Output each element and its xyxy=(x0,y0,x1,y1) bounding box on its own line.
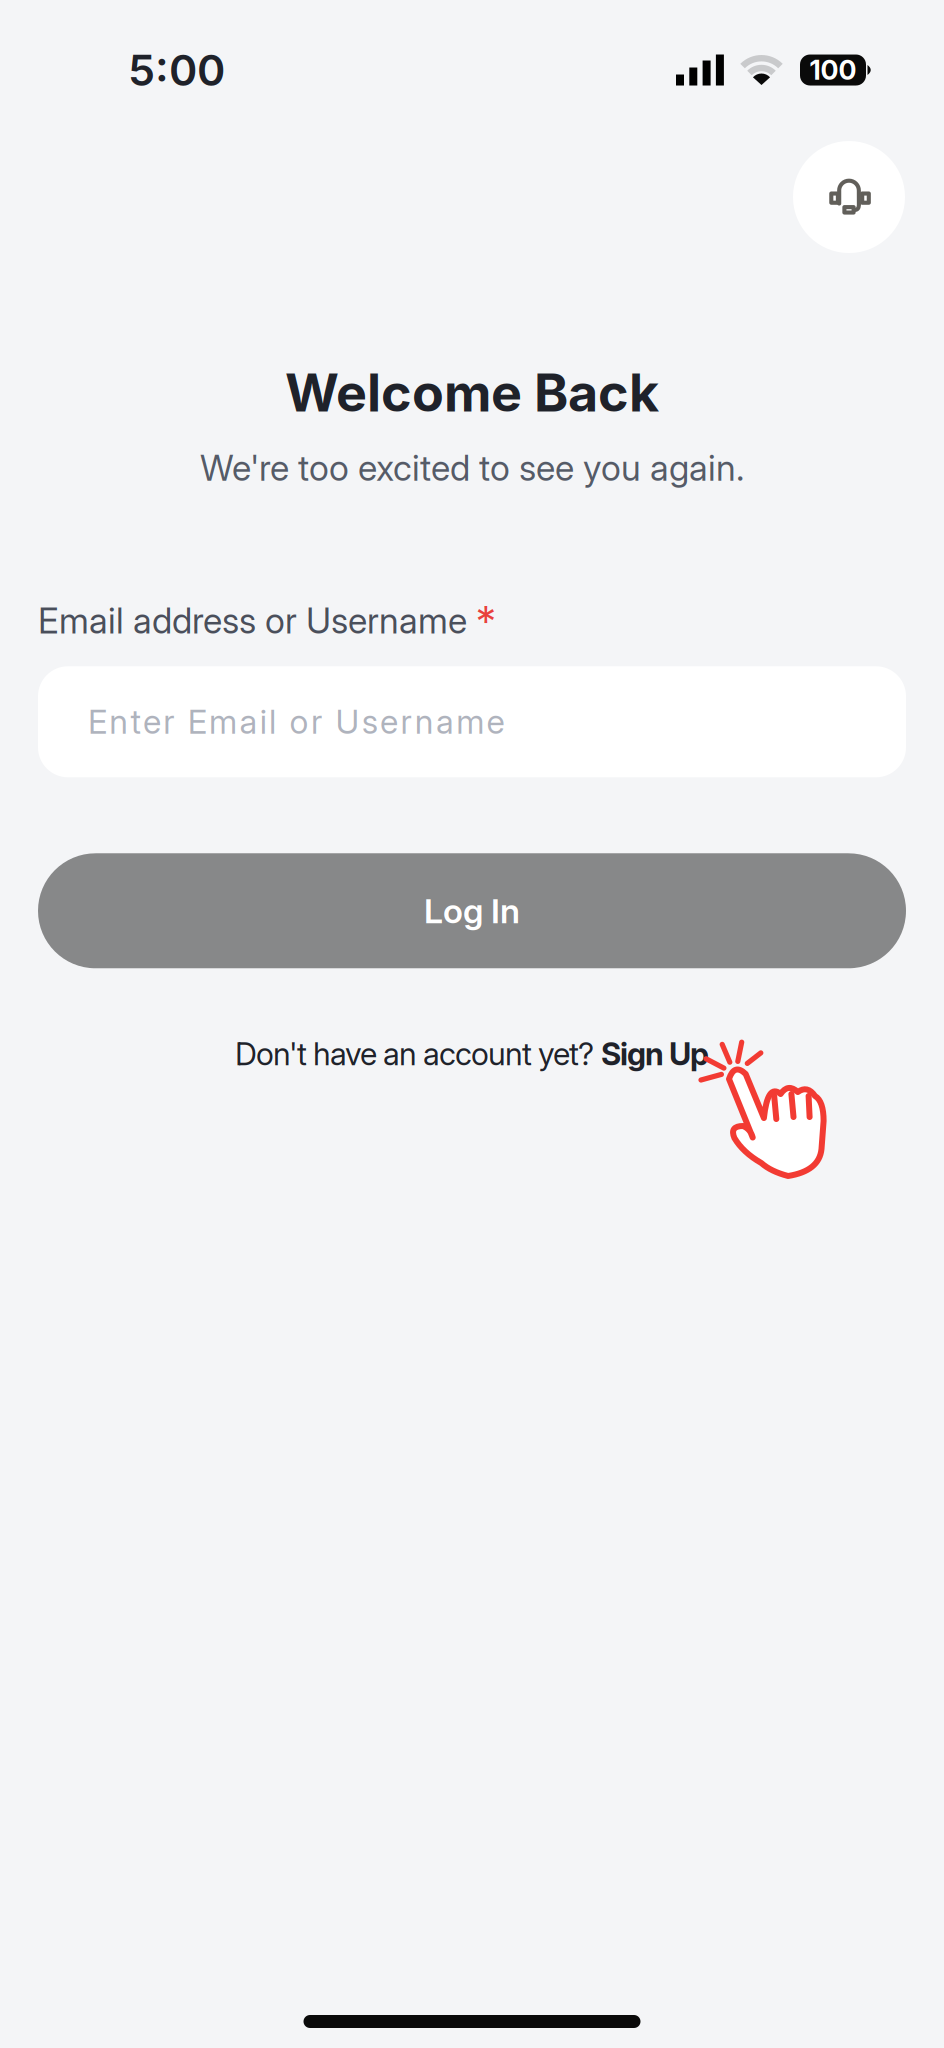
staticText: Enter Email or Username xyxy=(88,702,505,742)
staticText: * xyxy=(476,595,496,646)
staticText: Email address or Username xyxy=(38,600,467,642)
staticText: 5:00 xyxy=(128,44,225,96)
button[interactable]: Sign Up xyxy=(601,1035,709,1073)
staticText: Don't have an account yet? xyxy=(235,1035,601,1073)
button[interactable]: Log In xyxy=(38,853,906,968)
staticText: 100 xyxy=(809,54,856,86)
button[interactable]: Support xyxy=(793,141,905,253)
staticText: Log In xyxy=(424,890,520,931)
staticText: Sign Up xyxy=(601,1035,709,1073)
button[interactable]: Enter Email or Username xyxy=(38,666,906,777)
staticText: We're too excited to see you again. xyxy=(200,447,744,489)
staticText: Welcome Back xyxy=(285,361,659,424)
